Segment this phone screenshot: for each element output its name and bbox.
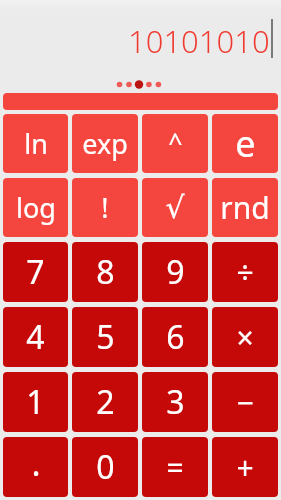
staticText: 4: [26, 315, 45, 359]
button[interactable]: [3, 93, 278, 110]
button[interactable]: 4: [3, 307, 68, 367]
staticText: −: [236, 382, 254, 423]
button[interactable]: =: [142, 437, 208, 497]
button[interactable]: 2: [72, 372, 138, 432]
button[interactable]: ln: [3, 114, 68, 173]
button[interactable]: !: [72, 178, 138, 237]
button[interactable]: ^: [142, 114, 208, 173]
button[interactable]: −: [212, 372, 278, 432]
staticText: 10101010: [128, 20, 270, 62]
button[interactable]: rnd: [212, 178, 278, 237]
button[interactable]: 9: [142, 242, 208, 302]
staticText: 1: [26, 380, 45, 424]
button[interactable]: √: [142, 178, 208, 237]
button[interactable]: 1: [3, 372, 68, 432]
button[interactable]: 6: [142, 307, 208, 367]
staticText: =: [166, 447, 184, 488]
staticText: ÷: [236, 252, 254, 293]
button[interactable]: log: [3, 178, 68, 237]
staticText: exp: [82, 125, 128, 162]
staticText: +: [236, 447, 254, 488]
button[interactable]: 3: [142, 372, 208, 432]
staticText: !: [101, 189, 109, 226]
staticText: 6: [166, 315, 185, 359]
button[interactable]: +: [212, 437, 278, 497]
staticText: ln: [24, 125, 48, 162]
staticText: 0: [96, 445, 115, 489]
staticText: 9: [166, 250, 185, 294]
button[interactable]: e: [212, 114, 278, 173]
button[interactable]: 0: [72, 437, 138, 497]
button[interactable]: .: [3, 437, 68, 497]
staticText: √: [165, 190, 185, 225]
staticText: log: [16, 189, 56, 226]
staticText: 5: [96, 315, 115, 359]
staticText: 7: [26, 250, 45, 294]
staticText: 8: [96, 250, 115, 294]
staticText: 3: [166, 380, 185, 424]
button[interactable]: 5: [72, 307, 138, 367]
staticText: ×: [236, 317, 254, 358]
button[interactable]: ÷: [212, 242, 278, 302]
button[interactable]: exp: [72, 114, 138, 173]
button[interactable]: ×: [212, 307, 278, 367]
staticText: e: [235, 119, 256, 168]
button[interactable]: 7: [3, 242, 68, 302]
staticText: ^: [168, 125, 183, 159]
button[interactable]: 8: [72, 242, 138, 302]
staticText: 2: [96, 380, 115, 424]
staticText: .: [31, 440, 41, 486]
staticText: rnd: [220, 187, 270, 228]
